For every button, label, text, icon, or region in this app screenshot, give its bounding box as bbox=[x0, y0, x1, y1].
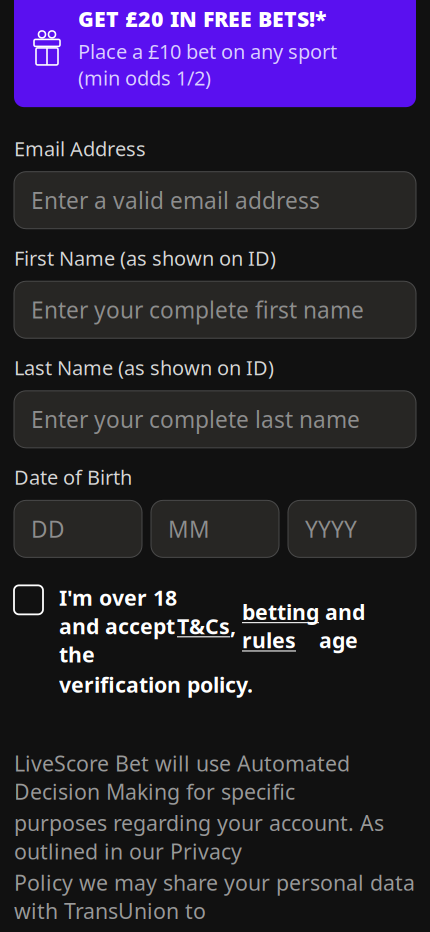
staticText: and age bbox=[319, 597, 365, 654]
button[interactable]: I'm over 18 and accept the bbox=[14, 583, 416, 727]
staticText: Date of Birth bbox=[14, 464, 132, 490]
staticText: verification policy. bbox=[59, 670, 253, 699]
staticText: Place a £10 bet on any sport (min odds 1… bbox=[78, 38, 337, 91]
staticText: Enter your complete last name bbox=[31, 404, 360, 434]
staticText: LiveScore Bet will use Automated Decisio… bbox=[14, 749, 350, 806]
button[interactable]: MM bbox=[151, 500, 279, 557]
staticText: DD bbox=[31, 514, 65, 544]
staticText: First Name (as shown on ID) bbox=[14, 245, 276, 271]
staticText: Enter a valid email address bbox=[31, 185, 320, 215]
button[interactable]: DD bbox=[14, 500, 142, 557]
button[interactable]: Enter your complete last name bbox=[14, 391, 416, 448]
button[interactable]: Enter your complete first name bbox=[14, 281, 416, 338]
staticText: Last Name (as shown on ID) bbox=[14, 354, 274, 381]
staticText: Policy we may share your personal data w… bbox=[14, 868, 415, 925]
staticText: YYYY bbox=[305, 514, 357, 544]
button[interactable]: Enter a valid email address bbox=[14, 172, 416, 229]
staticText: T&Cs bbox=[177, 612, 230, 640]
staticText: , bbox=[230, 612, 242, 640]
staticText: purposes regarding your account. As outl… bbox=[14, 809, 384, 865]
staticText: GET £20 IN FREE BETS!* bbox=[78, 5, 326, 33]
staticText: MM bbox=[168, 514, 210, 544]
staticText: Enter your complete first name bbox=[31, 295, 364, 325]
staticText: betting rules bbox=[242, 597, 319, 654]
button[interactable]: YYYY bbox=[288, 500, 416, 557]
staticText: Email Address bbox=[14, 135, 146, 162]
staticText: I'm over 18 and accept the bbox=[59, 583, 177, 668]
